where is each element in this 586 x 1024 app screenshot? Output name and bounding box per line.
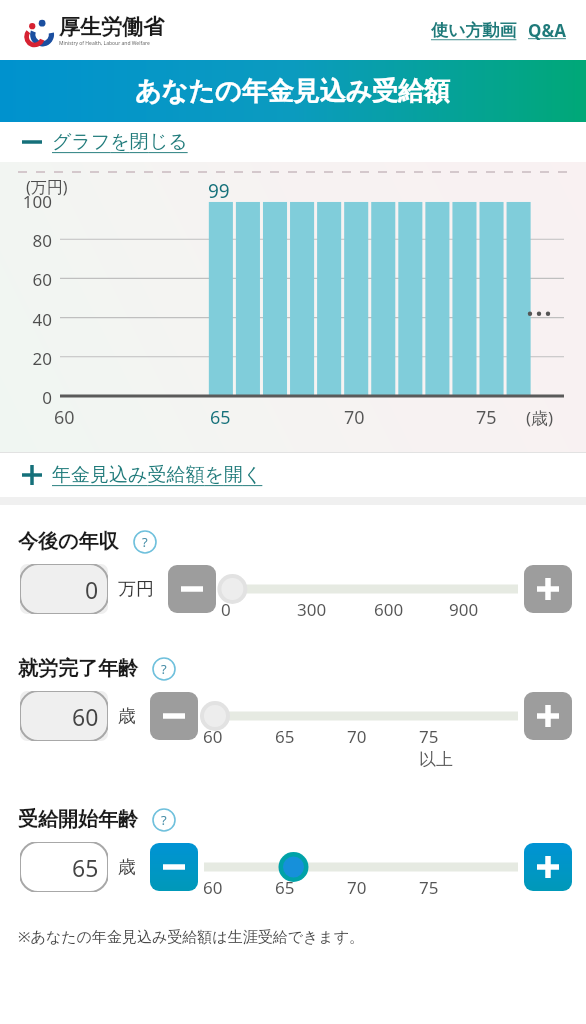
staticText: 歳 xyxy=(118,705,136,728)
button[interactable]: 0 xyxy=(20,564,108,614)
staticText: (歳) xyxy=(526,406,554,429)
staticText: (万円) xyxy=(26,176,68,198)
staticText: 65 xyxy=(72,852,99,883)
staticText: 65 xyxy=(275,876,295,899)
button[interactable]: 減らす xyxy=(150,692,198,740)
staticText: 厚生労働省 xyxy=(59,14,164,40)
staticText: 0 xyxy=(85,574,99,605)
button[interactable]: Q&A xyxy=(526,17,568,44)
staticText: 万円 xyxy=(118,578,154,601)
staticText: 20 xyxy=(0,347,52,370)
button[interactable]: 増やす xyxy=(524,565,572,613)
staticText: 65 xyxy=(210,405,231,430)
button[interactable]: ヘルプ xyxy=(152,808,176,832)
button[interactable]: 増やす xyxy=(524,843,572,891)
button[interactable]: 減らす xyxy=(168,565,216,613)
staticText: あなたの年金見込み受給額 xyxy=(135,75,451,108)
staticText: 70 xyxy=(347,725,367,748)
staticText: グラフを閉じる xyxy=(52,130,188,154)
staticText: 75 xyxy=(476,405,497,430)
staticText: 年金見込み受給額を開く xyxy=(52,463,263,487)
staticText: 70 xyxy=(344,405,365,430)
staticText: 300 xyxy=(297,598,327,621)
staticText: ※あなたの年金見込み受給額は生涯受給できます。 xyxy=(18,926,365,946)
staticText: 65 xyxy=(275,725,295,748)
button[interactable]: 65 xyxy=(20,842,108,892)
staticText: 99 xyxy=(208,178,230,204)
staticText: Q&A xyxy=(528,19,566,42)
staticText: 60 xyxy=(0,268,52,291)
staticText: 100 xyxy=(0,190,52,213)
staticText: 今後の年収 xyxy=(18,529,119,554)
staticText: 75 xyxy=(419,725,439,748)
staticText: ? xyxy=(161,660,167,678)
button[interactable]: ヘルプ xyxy=(133,530,157,554)
staticText: ? xyxy=(161,811,167,829)
staticText: 使い方動画 xyxy=(431,20,517,41)
staticText: 就労完了年齢 xyxy=(18,656,138,681)
staticText: 40 xyxy=(0,308,52,331)
button[interactable]: グラフを閉じる xyxy=(0,122,586,162)
button[interactable]: 年金見込み受給額を開く xyxy=(0,453,586,497)
staticText: 受給開始年齢 xyxy=(18,807,138,832)
staticText: 75 xyxy=(419,876,439,899)
button[interactable]: 減らす xyxy=(150,843,198,891)
staticText: 60 xyxy=(72,701,99,732)
staticText: 80 xyxy=(0,229,52,252)
staticText: Ministry of Health, Labour and Welfare xyxy=(59,40,150,47)
staticText: 0 xyxy=(221,598,231,621)
staticText: ? xyxy=(142,533,148,551)
staticText: 600 xyxy=(374,598,404,621)
staticText: 以上 xyxy=(419,749,453,770)
button[interactable]: 使い方動画 xyxy=(429,18,519,43)
button[interactable]: 増やす xyxy=(524,692,572,740)
button[interactable]: 60 xyxy=(20,691,108,741)
staticText: 歳 xyxy=(118,856,136,879)
staticText: 60 xyxy=(203,725,223,748)
staticText: 0 xyxy=(0,386,52,409)
staticText: 900 xyxy=(449,598,479,621)
button[interactable]: ヘルプ xyxy=(152,657,176,681)
staticText: 60 xyxy=(54,405,75,430)
staticText: 60 xyxy=(203,876,223,899)
staticText: 70 xyxy=(347,876,367,899)
